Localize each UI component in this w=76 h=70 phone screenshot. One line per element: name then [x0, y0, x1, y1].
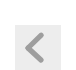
button[interactable]: Back	[15, 25, 61, 70]
